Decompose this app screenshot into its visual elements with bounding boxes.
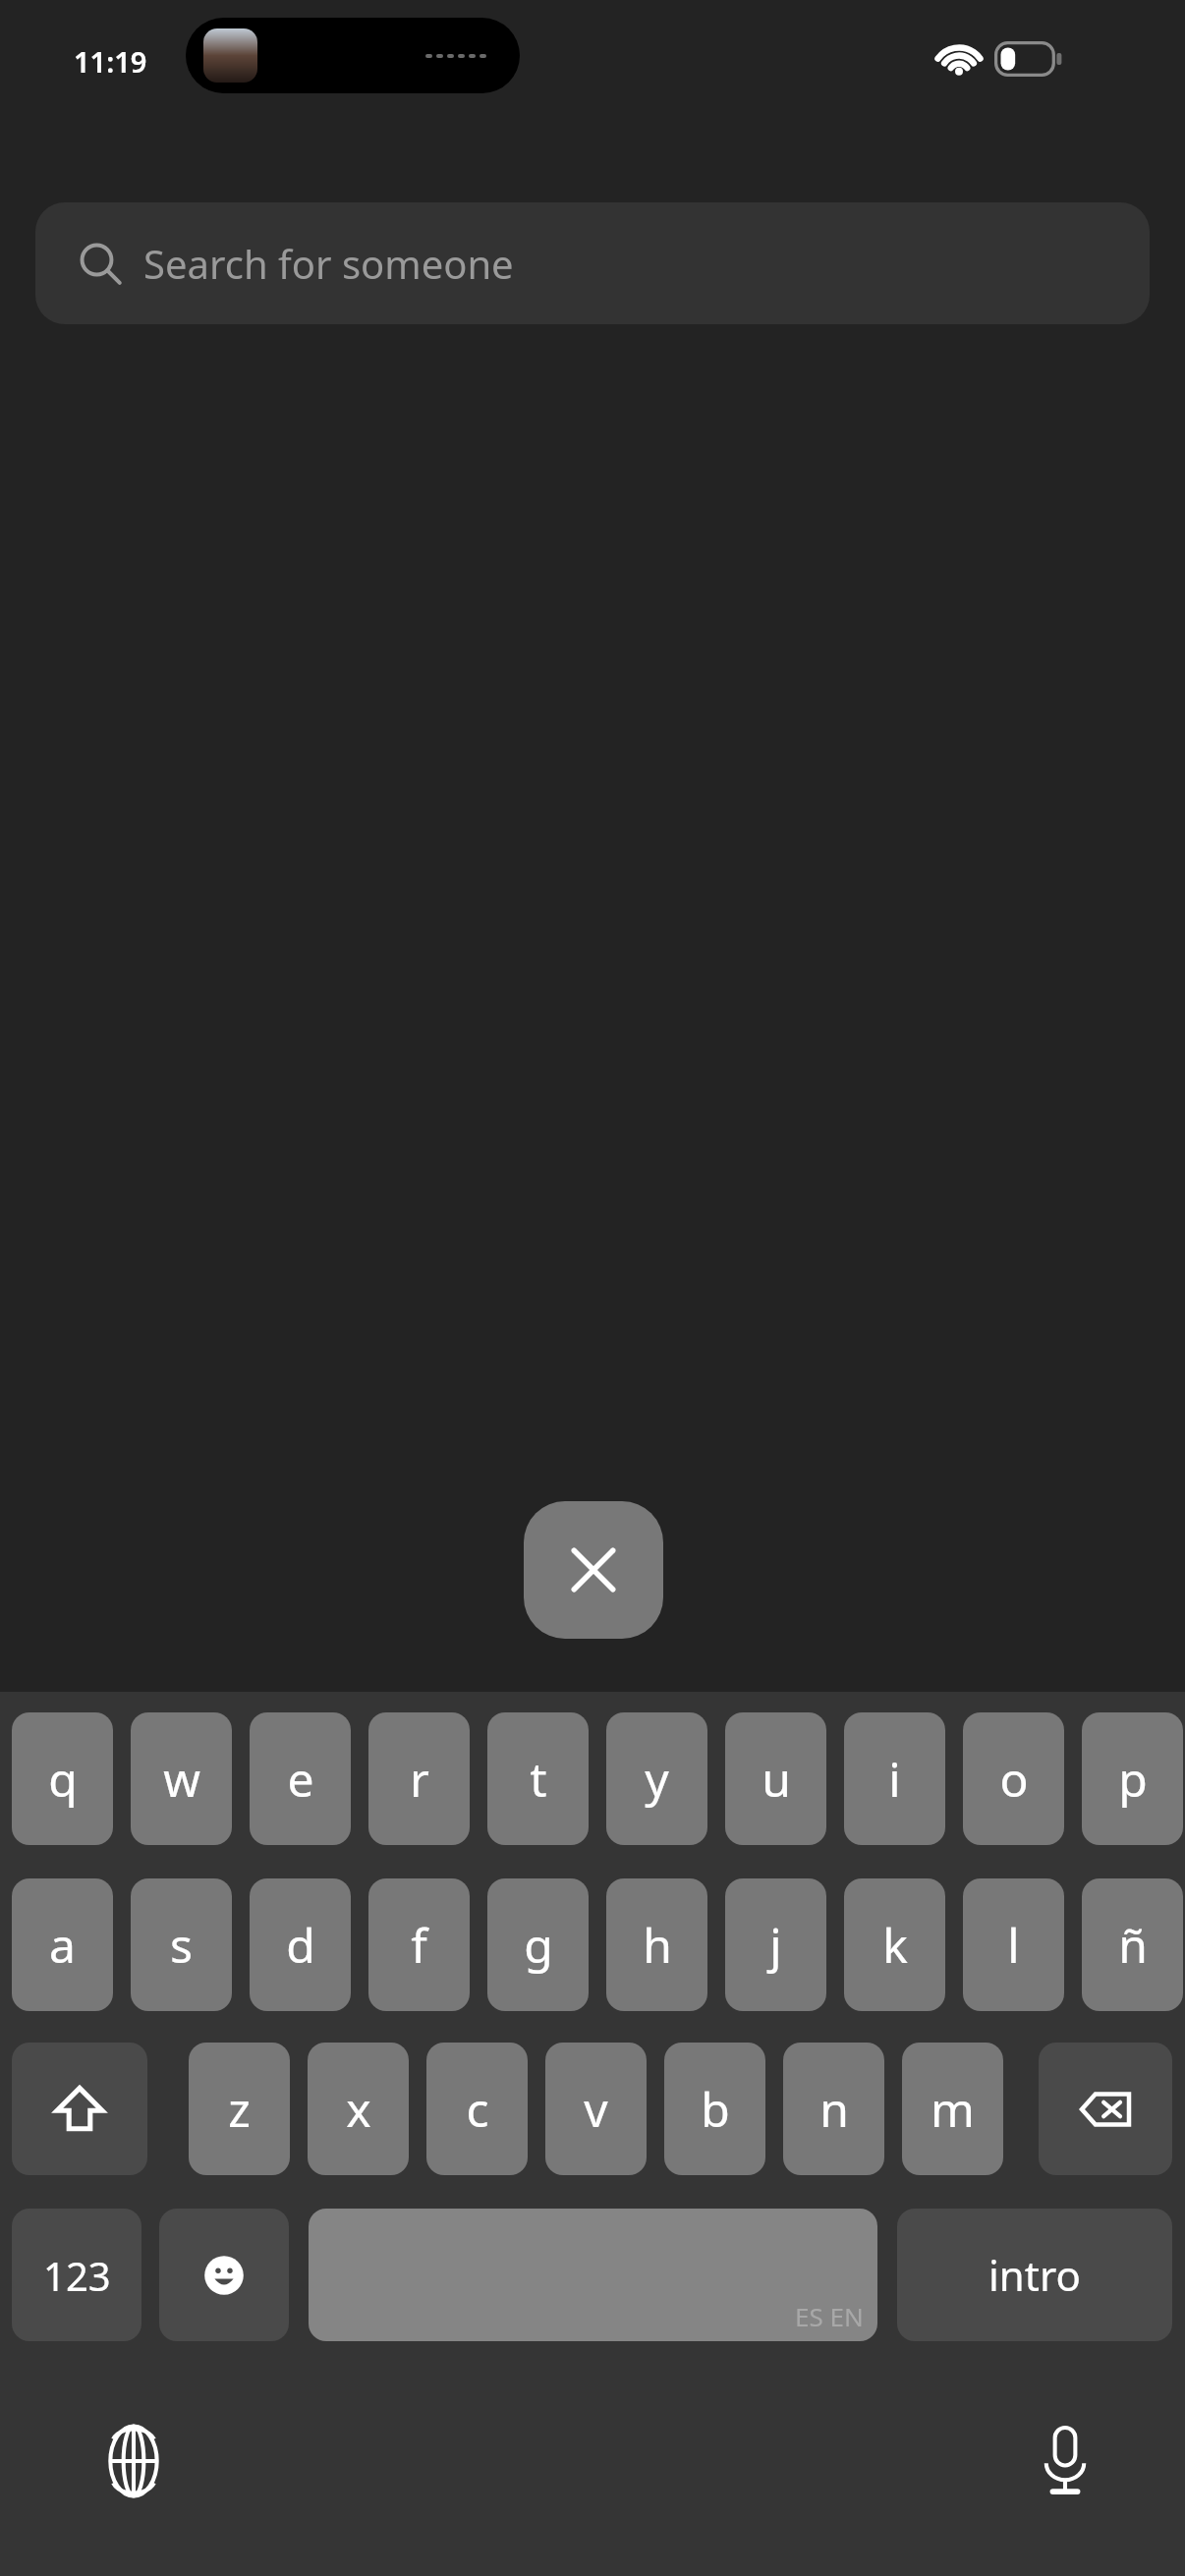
button[interactable]: o (963, 1712, 1064, 1845)
staticText: z (228, 2077, 251, 2141)
button[interactable]: Change language (86, 2414, 181, 2508)
button[interactable]: Shift (12, 2043, 147, 2175)
button[interactable]: Close (524, 1501, 663, 1639)
staticText: w (163, 1747, 200, 1811)
staticText: f (411, 1913, 427, 1977)
staticText: l (1007, 1913, 1020, 1977)
button[interactable]: t (487, 1712, 589, 1845)
staticText: i (888, 1747, 901, 1811)
button[interactable]: z (189, 2043, 290, 2175)
button[interactable]: p (1082, 1712, 1183, 1845)
button[interactable]: j (725, 1878, 826, 2011)
button[interactable]: Search for someone (35, 202, 1150, 324)
button[interactable]: y (606, 1712, 707, 1845)
button[interactable]: Emoji (159, 2209, 289, 2341)
staticText: q (48, 1747, 78, 1811)
staticText: g (524, 1913, 553, 1977)
staticText: h (643, 1913, 672, 1977)
staticText: u (762, 1747, 791, 1811)
staticText: b (701, 2077, 730, 2141)
staticText: o (999, 1747, 1029, 1811)
staticText: n (819, 2077, 849, 2141)
staticText: s (170, 1913, 193, 1977)
staticText: Search for someone (143, 237, 514, 290)
button[interactable]: u (725, 1712, 826, 1845)
button[interactable]: d (250, 1878, 351, 2011)
button[interactable]: Space (309, 2209, 877, 2341)
button[interactable]: r (368, 1712, 470, 1845)
button[interactable]: a (12, 1878, 113, 2011)
button[interactable]: intro (897, 2209, 1172, 2341)
button[interactable]: v (545, 2043, 647, 2175)
staticText: k (882, 1913, 908, 1977)
staticText: e (287, 1747, 314, 1811)
button[interactable]: Voice input (1018, 2414, 1112, 2508)
button[interactable]: Backspace (1039, 2043, 1172, 2175)
button[interactable]: 123 (12, 2209, 141, 2341)
staticText: y (645, 1747, 669, 1811)
button[interactable]: w (131, 1712, 232, 1845)
button[interactable]: c (426, 2043, 528, 2175)
button[interactable]: e (250, 1712, 351, 1845)
button[interactable]: l (963, 1878, 1064, 2011)
staticText: j (769, 1913, 782, 1977)
button[interactable]: x (308, 2043, 409, 2175)
staticText: m (931, 2077, 975, 2141)
button[interactable]: q (12, 1712, 113, 1845)
button[interactable]: ñ (1082, 1878, 1183, 2011)
button[interactable]: b (664, 2043, 765, 2175)
staticText: d (286, 1913, 315, 1977)
staticText: 123 (43, 2249, 111, 2302)
staticText: ES EN (795, 2299, 864, 2333)
button[interactable]: m (902, 2043, 1003, 2175)
staticText: c (466, 2077, 489, 2141)
button[interactable]: n (783, 2043, 884, 2175)
staticText: t (530, 1747, 547, 1811)
staticText: intro (988, 2247, 1081, 2303)
staticText: ñ (1118, 1913, 1148, 1977)
staticText: 11:19 (74, 42, 147, 81)
button[interactable]: s (131, 1878, 232, 2011)
button[interactable]: i (844, 1712, 945, 1845)
button[interactable]: k (844, 1878, 945, 2011)
staticText: v (584, 2077, 608, 2141)
button[interactable]: h (606, 1878, 707, 2011)
staticText: p (1118, 1747, 1148, 1811)
button[interactable]: g (487, 1878, 589, 2011)
button[interactable]: f (368, 1878, 470, 2011)
staticText: r (410, 1747, 429, 1811)
staticText: x (346, 2077, 371, 2141)
staticText: a (49, 1913, 76, 1977)
